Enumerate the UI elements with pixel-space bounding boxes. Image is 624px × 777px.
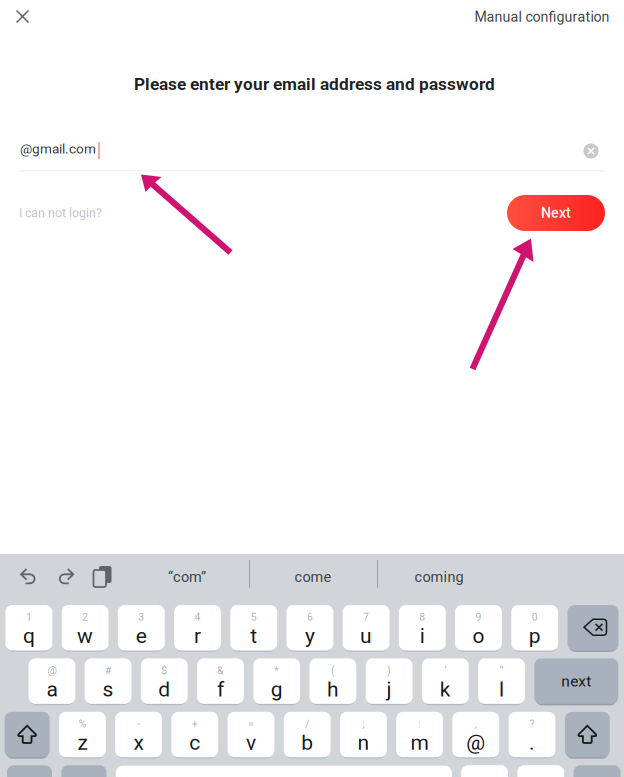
staticText: 1 bbox=[26, 611, 32, 623]
staticText: = bbox=[248, 718, 254, 730]
button[interactable]: % bbox=[59, 712, 106, 759]
staticText: & bbox=[217, 664, 224, 677]
staticText: $ bbox=[161, 664, 167, 677]
staticText: ; bbox=[362, 718, 364, 730]
staticText: , bbox=[475, 718, 477, 730]
button[interactable]: Undo bbox=[20, 568, 37, 585]
staticText: next bbox=[561, 672, 591, 690]
staticText: . bbox=[529, 730, 535, 755]
button[interactable]: Shift bbox=[565, 712, 610, 759]
staticText: i bbox=[420, 623, 425, 648]
button[interactable]: 0 bbox=[511, 605, 558, 652]
button[interactable]: / bbox=[284, 712, 331, 759]
staticText: Please enter your email address and pass… bbox=[134, 74, 495, 94]
staticText: 2 bbox=[82, 611, 88, 623]
button[interactable]: Manual configuration bbox=[468, 4, 616, 30]
staticText: m bbox=[411, 730, 429, 755]
staticText: ? bbox=[529, 718, 534, 730]
staticText: y bbox=[305, 623, 315, 648]
button[interactable]: - bbox=[115, 712, 162, 759]
staticText: ) bbox=[387, 664, 391, 677]
staticText: s bbox=[103, 677, 114, 701]
staticText: 5 bbox=[251, 611, 257, 623]
staticText: 9 bbox=[475, 611, 481, 623]
button[interactable]: “ bbox=[478, 658, 525, 705]
staticText: 8 bbox=[419, 611, 425, 623]
staticText: f bbox=[217, 677, 224, 701]
button[interactable]: Clear text bbox=[576, 136, 606, 166]
button[interactable]: Redo bbox=[57, 568, 74, 585]
button[interactable]: 6 bbox=[286, 605, 333, 652]
staticText: v bbox=[246, 730, 256, 755]
staticText: 7 bbox=[363, 611, 369, 623]
button[interactable]: * bbox=[253, 658, 300, 705]
staticText: / bbox=[305, 718, 309, 730]
button[interactable]: Next bbox=[507, 195, 605, 231]
staticText: “ bbox=[499, 664, 503, 677]
staticText: l bbox=[499, 677, 504, 701]
button[interactable]: ? bbox=[509, 712, 555, 759]
staticText: # bbox=[105, 664, 111, 677]
button[interactable]: ( bbox=[309, 658, 356, 705]
staticText: w bbox=[77, 623, 93, 648]
button[interactable]: Close bbox=[10, 5, 34, 27]
button[interactable]: 3 bbox=[118, 605, 165, 652]
staticText: a bbox=[46, 677, 57, 701]
staticText: d bbox=[158, 677, 170, 701]
button[interactable]: ‘ bbox=[422, 658, 469, 705]
staticText: ( bbox=[331, 664, 335, 677]
staticText: @ bbox=[466, 730, 485, 755]
staticText: x bbox=[134, 730, 144, 755]
button[interactable]: 5 bbox=[230, 605, 277, 652]
button[interactable]: Next field bbox=[534, 658, 618, 705]
staticText: n bbox=[357, 730, 369, 755]
button[interactable]: Delete bbox=[567, 605, 618, 652]
button[interactable]: $ bbox=[141, 658, 188, 705]
button[interactable]: Shift bbox=[5, 712, 50, 759]
staticText: @ bbox=[47, 664, 56, 677]
button[interactable]: “com” bbox=[129, 560, 245, 594]
button[interactable]: Paste bbox=[93, 566, 112, 589]
button[interactable]: @ bbox=[28, 658, 75, 705]
staticText: g bbox=[271, 677, 283, 701]
button[interactable]: + bbox=[171, 712, 218, 759]
button[interactable]: 7 bbox=[343, 605, 389, 652]
staticText: Manual configuration bbox=[474, 9, 609, 25]
staticText: h bbox=[327, 677, 339, 701]
staticText: * bbox=[274, 664, 279, 677]
staticText: e bbox=[136, 623, 147, 648]
staticText: k bbox=[440, 677, 451, 701]
staticText: - bbox=[137, 718, 140, 730]
staticText: u bbox=[360, 623, 372, 648]
button[interactable] bbox=[517, 765, 564, 777]
staticText: Next bbox=[541, 205, 571, 221]
button[interactable]: ) bbox=[366, 658, 412, 705]
button[interactable]: , bbox=[452, 712, 499, 759]
staticText: @gmail.com bbox=[20, 141, 96, 157]
button[interactable]: & bbox=[197, 658, 244, 705]
button[interactable]: # bbox=[85, 658, 131, 705]
staticText: % bbox=[78, 718, 86, 730]
staticText: z bbox=[77, 730, 87, 755]
button[interactable]: = bbox=[228, 712, 274, 759]
button[interactable]: 9 bbox=[455, 605, 502, 652]
staticText: r bbox=[194, 623, 201, 648]
button[interactable]: 2 bbox=[62, 605, 108, 652]
button[interactable]: coming bbox=[381, 560, 497, 594]
staticText: I can not login? bbox=[19, 206, 102, 220]
button[interactable]: Emoji bbox=[61, 765, 106, 777]
button[interactable]: 8 bbox=[399, 605, 446, 652]
button[interactable] bbox=[461, 765, 508, 777]
button[interactable]: 1 bbox=[5, 605, 52, 652]
button[interactable]: Return bbox=[574, 765, 621, 777]
staticText: 6 bbox=[307, 611, 313, 623]
staticText: b bbox=[301, 730, 313, 755]
button[interactable]: Symbols bbox=[7, 765, 52, 777]
button[interactable]: come bbox=[255, 560, 371, 594]
button[interactable]: 4 bbox=[174, 605, 221, 652]
button[interactable]: ; bbox=[340, 712, 387, 759]
button[interactable]: : bbox=[396, 712, 443, 759]
staticText: : bbox=[418, 718, 421, 730]
button[interactable]: I can not login? bbox=[19, 202, 111, 224]
